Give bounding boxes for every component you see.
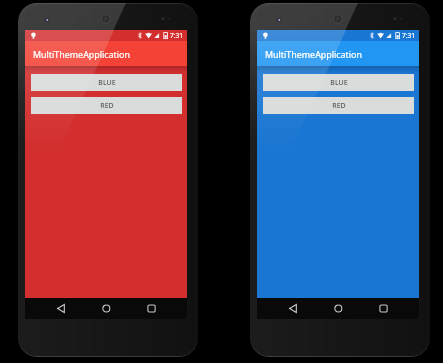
staticText: BLUE [98,78,116,88]
staticText: BLUE [330,78,348,88]
staticText: 7:31 [402,31,416,40]
button[interactable]: BLUE [31,74,182,91]
button[interactable]: RED [263,97,414,114]
staticText: MultiThemeApplication [265,48,362,60]
staticText: RED [100,101,114,111]
staticText: RED [332,101,346,111]
button[interactable]: BLUE [263,74,414,91]
staticText: 7:31 [170,31,184,40]
staticText: MultiThemeApplication [33,48,130,60]
button[interactable]: RED [31,97,182,114]
